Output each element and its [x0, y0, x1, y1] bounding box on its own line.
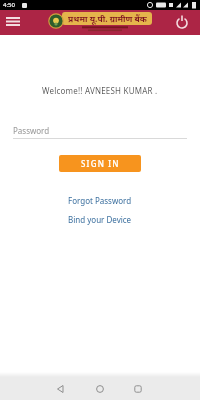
- staticText: SIGN IN: [81, 158, 120, 169]
- button[interactable]: Forgot Password: [68, 195, 132, 206]
- button[interactable]: [52, 381, 68, 397]
- button[interactable]: [130, 381, 146, 397]
- button[interactable]: [92, 381, 108, 397]
- staticText: Welcome!! AVNEESH KUMAR .: [42, 85, 158, 96]
- staticText: Forgot Password: [68, 195, 132, 206]
- staticText: प्रथमा यू.पी. ग्रामीण बैंक: [68, 13, 147, 25]
- button[interactable]: SIGN IN: [59, 155, 141, 172]
- staticText: Bind your Device: [68, 214, 132, 225]
- staticText: Password: [13, 125, 50, 136]
- button[interactable]: [172, 13, 192, 31]
- staticText: 4:50: [3, 1, 15, 9]
- button[interactable]: Bind your Device: [68, 214, 132, 225]
- button[interactable]: [4, 15, 22, 30]
